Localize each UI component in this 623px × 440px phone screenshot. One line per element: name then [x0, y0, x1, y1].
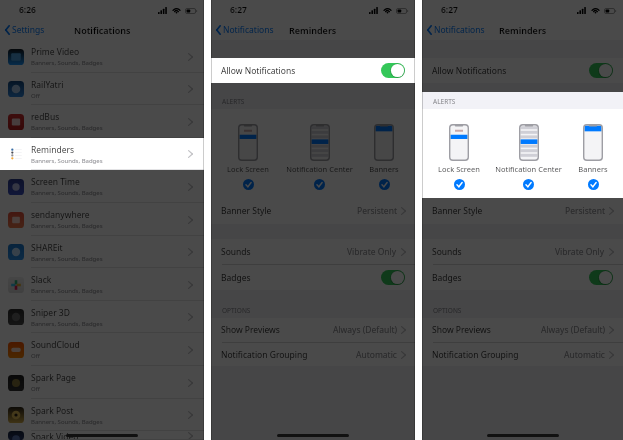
staticText: Show Previews	[432, 324, 491, 336]
button[interactable]: Toggle on	[381, 63, 405, 78]
button[interactable]: Lock Screen	[227, 124, 269, 190]
button[interactable]: Notification Center	[495, 124, 562, 190]
button[interactable]: Spark Video	[0, 431, 204, 440]
staticText: Off	[31, 385, 40, 393]
button[interactable]: Spark Post	[0, 399, 204, 431]
staticText: Notification Grouping	[221, 349, 308, 361]
staticText: Banners, Sounds, Badges	[31, 189, 103, 197]
staticText: Reminders	[31, 144, 75, 156]
staticText: RailYatri	[31, 79, 64, 91]
button[interactable]: Banners	[369, 124, 399, 190]
staticText: Prime Video	[31, 46, 80, 58]
button[interactable]: Sounds	[211, 239, 415, 264]
button[interactable]: Badges	[422, 265, 623, 290]
button[interactable]: SoundCloud	[0, 333, 204, 366]
staticText: ALERTS	[222, 97, 245, 106]
staticText: OPTIONS	[433, 306, 462, 315]
button[interactable]: Settings	[5, 24, 45, 36]
staticText: Allow Notifications	[432, 65, 507, 77]
staticText: Settings	[12, 24, 45, 36]
staticText: Show Previews	[221, 324, 280, 336]
staticText: Notifications	[223, 24, 274, 36]
staticText: Reminders	[289, 24, 337, 36]
staticText: Off	[31, 352, 40, 360]
button[interactable]: Allow Notifications	[422, 58, 623, 83]
button[interactable]: Notifications	[216, 24, 274, 36]
button[interactable]: Banner Style	[211, 198, 415, 224]
button[interactable]: Notification Grouping	[211, 343, 415, 366]
button[interactable]: Slack	[0, 268, 204, 301]
staticText: Sniper 3D	[31, 307, 70, 319]
staticText: Automatic	[356, 349, 397, 361]
staticText: Off	[31, 92, 40, 100]
button[interactable]: Sounds	[422, 239, 623, 264]
staticText: Notification Grouping	[432, 349, 519, 361]
button[interactable]: Notification Center	[286, 124, 353, 190]
staticText: 6:26	[19, 4, 36, 16]
button[interactable]: Allow Notifications	[211, 58, 415, 83]
button[interactable]: Banners	[578, 124, 608, 190]
staticText: Vibrate Only	[555, 246, 605, 258]
button[interactable]: Lock Screen	[438, 124, 480, 190]
button[interactable]: Banner Style	[422, 198, 623, 224]
button[interactable]: Show Previews	[422, 318, 623, 342]
button[interactable]: Badges	[211, 265, 415, 290]
staticText: Lock Screen	[438, 164, 480, 174]
staticText: Notification Center	[286, 164, 353, 174]
staticText: 6:27	[230, 4, 247, 16]
staticText: Spark Page	[31, 372, 76, 384]
staticText: OPTIONS	[222, 306, 251, 315]
staticText: Notification Center	[495, 164, 562, 174]
staticText: Automatic	[564, 349, 605, 361]
button[interactable]: Toggle on	[381, 270, 405, 285]
staticText: Banners, Sounds, Badges	[31, 59, 103, 67]
button[interactable]: Screen Time	[0, 170, 204, 203]
staticText: Banners	[578, 164, 608, 174]
staticText: Banners, Sounds, Badges	[31, 418, 103, 426]
staticText: Reminders	[499, 24, 547, 36]
staticText: Banners, Sounds, Badges	[31, 320, 103, 328]
staticText: Sounds	[432, 246, 462, 258]
staticText: Notifications	[74, 24, 131, 36]
button[interactable]: Notifications	[427, 24, 485, 36]
staticText: Banners, Sounds, Badges	[31, 157, 103, 165]
button[interactable]: Prime Video	[0, 40, 204, 73]
staticText: Persistent	[565, 205, 605, 217]
button[interactable]: Spark Page	[0, 366, 204, 399]
staticText: Banners, Sounds, Badges	[31, 222, 103, 230]
button[interactable]: RailYatri	[0, 73, 204, 105]
staticText: Banners	[369, 164, 399, 174]
staticText: Always (Default)	[333, 324, 397, 336]
staticText: Always (Default)	[541, 324, 605, 336]
staticText: Spark Video	[31, 431, 79, 440]
staticText: Badges	[221, 272, 251, 284]
button[interactable]: Toggle on	[589, 63, 613, 78]
button[interactable]: redBus	[0, 105, 204, 138]
button[interactable]: Reminders	[0, 138, 204, 170]
button[interactable]: Toggle on	[589, 270, 613, 285]
staticText: Banners, Sounds, Badges	[31, 124, 103, 132]
staticText: SoundCloud	[31, 339, 80, 351]
staticText: Lock Screen	[227, 164, 269, 174]
staticText: Screen Time	[31, 176, 80, 188]
staticText: Banner Style	[221, 205, 272, 217]
staticText: 6:27	[441, 4, 458, 16]
staticText: SHAREit	[31, 242, 63, 254]
button[interactable]: Sniper 3D	[0, 301, 204, 333]
staticText: Banners, Sounds, Badges	[31, 287, 103, 295]
button[interactable]: Notification Grouping	[422, 343, 623, 366]
staticText: sendanywhere	[31, 209, 90, 221]
staticText: Badges	[432, 272, 462, 284]
button[interactable]: Show Previews	[211, 318, 415, 342]
staticText: Spark Post	[31, 405, 74, 417]
staticText: Notifications	[434, 24, 485, 36]
staticText: Vibrate Only	[347, 246, 397, 258]
staticText: Banner Style	[432, 205, 483, 217]
staticText: Persistent	[357, 205, 397, 217]
staticText: Sounds	[221, 246, 251, 258]
staticText: Allow Notifications	[221, 65, 296, 77]
staticText: redBus	[31, 111, 60, 123]
button[interactable]: sendanywhere	[0, 203, 204, 236]
staticText: Slack	[31, 274, 52, 286]
button[interactable]: SHAREit	[0, 236, 204, 268]
